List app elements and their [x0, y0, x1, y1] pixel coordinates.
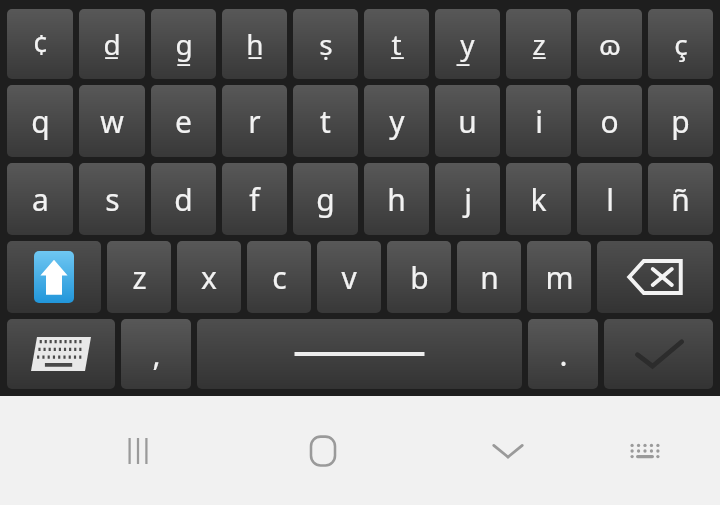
staticText: w: [100, 101, 124, 142]
staticText: t̲: [391, 25, 402, 63]
staticText: v: [341, 257, 357, 298]
button[interactable]: d̲: [79, 9, 145, 79]
button[interactable]: y̲: [435, 9, 500, 79]
staticText: q: [31, 101, 50, 142]
staticText: n: [480, 257, 499, 298]
button[interactable]: g̲: [151, 9, 216, 79]
button[interactable]: a: [7, 163, 73, 235]
button[interactable]: .: [528, 319, 598, 389]
button[interactable]: Switch keyboard: [7, 319, 115, 389]
button[interactable]: ç: [648, 9, 713, 79]
staticText: l: [606, 179, 614, 220]
button[interactable]: g: [293, 163, 358, 235]
staticText: i: [535, 101, 543, 142]
staticText: ç: [674, 25, 688, 63]
staticText: ɷ: [599, 25, 621, 63]
button[interactable]: Space: [197, 319, 522, 389]
button[interactable]: j: [435, 163, 500, 235]
button[interactable]: d: [151, 163, 216, 235]
button[interactable]: t̲: [364, 9, 429, 79]
staticText: x: [201, 257, 217, 298]
button[interactable]: n: [457, 241, 521, 313]
staticText: b: [410, 257, 429, 298]
staticText: s: [105, 179, 120, 220]
button[interactable]: Shift: [7, 241, 101, 313]
staticText: a: [32, 179, 49, 220]
button[interactable]: x: [177, 241, 241, 313]
button[interactable]: r: [222, 85, 287, 157]
button[interactable]: Hide keyboard: [464, 396, 552, 505]
staticText: ,: [152, 334, 161, 375]
staticText: y: [389, 101, 405, 142]
staticText: e: [175, 101, 192, 142]
staticText: g̲: [175, 25, 193, 63]
button[interactable]: l: [577, 163, 642, 235]
staticText: j: [464, 179, 472, 220]
staticText: h: [387, 179, 406, 220]
button[interactable]: z̲: [506, 9, 571, 79]
button[interactable]: z: [107, 241, 171, 313]
button[interactable]: i: [506, 85, 571, 157]
staticText: o: [600, 101, 619, 142]
staticText: m: [545, 257, 574, 298]
button[interactable]: k: [506, 163, 571, 235]
button[interactable]: u: [435, 85, 500, 157]
button[interactable]: b: [387, 241, 451, 313]
staticText: k: [530, 179, 547, 220]
staticText: d: [174, 179, 193, 220]
staticText: u: [458, 101, 477, 142]
button[interactable]: v: [317, 241, 381, 313]
staticText: h̲: [246, 25, 264, 63]
staticText: .: [559, 334, 568, 375]
button[interactable]: ñ: [648, 163, 713, 235]
staticText: ṣ: [319, 25, 333, 63]
button[interactable]: Keyboard settings: [601, 396, 689, 505]
button[interactable]: t: [293, 85, 358, 157]
staticText: g: [316, 179, 335, 220]
staticText: r: [248, 101, 261, 142]
button[interactable]: q: [7, 85, 73, 157]
staticText: f: [249, 179, 260, 220]
button[interactable]: o: [577, 85, 642, 157]
button[interactable]: e: [151, 85, 216, 157]
button[interactable]: s: [79, 163, 145, 235]
button[interactable]: m: [527, 241, 591, 313]
button[interactable]: ¢: [7, 9, 73, 79]
button[interactable]: ɷ: [577, 9, 642, 79]
button[interactable]: Enter: [604, 319, 713, 389]
staticText: c: [272, 257, 287, 298]
button[interactable]: c: [247, 241, 311, 313]
button[interactable]: ,: [121, 319, 191, 389]
button[interactable]: Recents: [94, 396, 182, 505]
button[interactable]: h̲: [222, 9, 287, 79]
button[interactable]: w: [79, 85, 145, 157]
staticText: d̲: [103, 25, 121, 63]
button[interactable]: y: [364, 85, 429, 157]
staticText: p: [671, 101, 690, 142]
button[interactable]: f: [222, 163, 287, 235]
button[interactable]: h: [364, 163, 429, 235]
staticText: y̲: [460, 25, 475, 63]
button[interactable]: Backspace: [597, 241, 713, 313]
staticText: z: [132, 257, 147, 298]
staticText: z̲: [532, 25, 546, 63]
staticText: t: [320, 101, 331, 142]
staticText: ñ: [671, 179, 690, 220]
button[interactable]: Home: [279, 396, 367, 505]
button[interactable]: p: [648, 85, 713, 157]
button[interactable]: ṣ: [293, 9, 358, 79]
staticText: ¢: [32, 25, 49, 63]
